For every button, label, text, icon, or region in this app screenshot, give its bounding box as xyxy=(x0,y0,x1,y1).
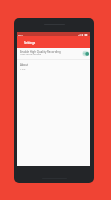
staticText: Settings xyxy=(24,41,36,45)
staticText: 1.0.2 xyxy=(20,67,26,70)
button[interactable]: Enable high quality recording xyxy=(82,50,89,57)
staticText: Enable High Quality Recording xyxy=(20,50,61,54)
button[interactable]: About xyxy=(17,60,90,71)
staticText: 9:41 xyxy=(18,33,23,36)
staticText: About xyxy=(20,63,29,67)
button[interactable]: Enable High Quality Recording xyxy=(17,48,90,59)
staticText: Uses more storage xyxy=(20,52,42,55)
